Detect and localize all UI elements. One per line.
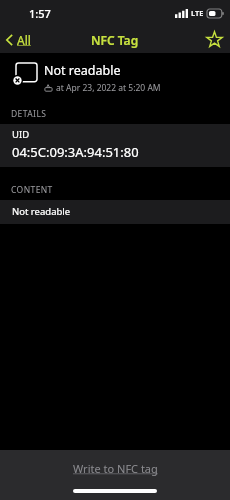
staticText: Not readable (44, 62, 121, 79)
staticText: 1:57 (29, 6, 51, 21)
staticText: UID (12, 128, 30, 141)
button[interactable]: Write to NFC tag (63, 458, 168, 479)
staticText: 04:5C:09:3A:94:51:80 (12, 143, 139, 161)
button[interactable]: All (0, 28, 39, 52)
button[interactable]: Not readable (0, 200, 230, 224)
staticText: Write to NFC tag (73, 461, 158, 476)
button[interactable]: Favorite (199, 27, 230, 52)
staticText: LTE (191, 8, 204, 18)
staticText: NFC Tag (91, 32, 139, 48)
button[interactable]: UID (0, 124, 230, 167)
staticText: at Apr 23, 2022 at 5:20 AM (56, 82, 161, 94)
staticText: All (17, 32, 31, 48)
staticText: DETAILS (11, 108, 47, 120)
staticText: Not readable (12, 205, 71, 218)
staticText: CONTENT (11, 184, 53, 196)
